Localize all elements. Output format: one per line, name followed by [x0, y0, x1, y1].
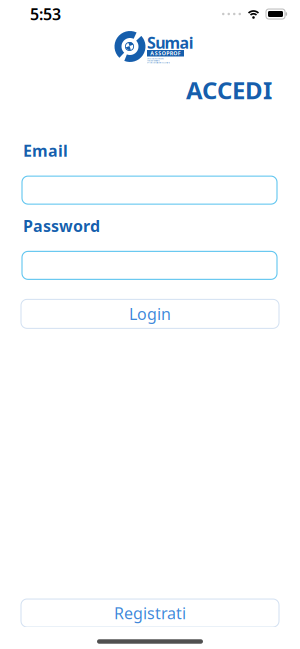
button[interactable]: Password	[0, 251, 300, 279]
staticText: 5:53	[30, 3, 61, 25]
staticText: ACCEDI	[186, 74, 272, 106]
staticText: Password	[23, 215, 100, 236]
staticText: e Professionalità dell'Area Sanitaria	[147, 62, 170, 63]
button[interactable]: Login	[0, 299, 300, 328]
staticText: Sumai	[147, 32, 194, 53]
staticText: Login	[129, 303, 171, 324]
staticText: Ambulatoriale Italiana	[147, 60, 160, 62]
staticText: Registrati	[114, 602, 186, 624]
staticText: Email	[23, 140, 68, 161]
staticText: ASSOPROF	[150, 50, 181, 57]
button[interactable]: Email	[0, 176, 300, 204]
button[interactable]: Registrati	[0, 599, 300, 627]
staticText: Sindacato Unico Medicina	[147, 58, 164, 60]
